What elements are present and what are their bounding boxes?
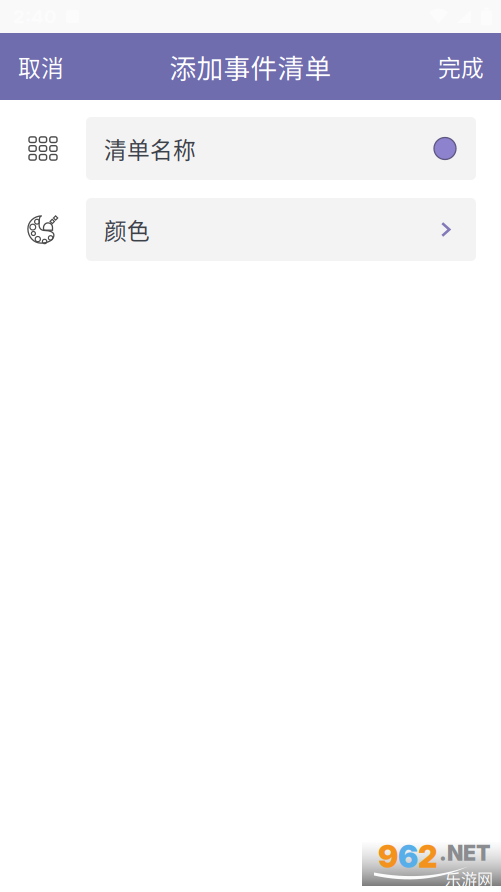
staticText: 取消	[18, 50, 64, 83]
staticText: 添加事件清单	[169, 47, 331, 86]
staticText: 9	[378, 838, 398, 875]
staticText: 颜色	[104, 213, 150, 246]
staticText: 清单名称	[104, 132, 196, 165]
button[interactable]: 取消	[0, 34, 80, 99]
staticText: 2	[418, 838, 438, 875]
staticText: 完成	[438, 50, 484, 83]
button[interactable]: 颜色	[0, 198, 501, 261]
button[interactable]: 清单名称	[0, 117, 501, 180]
staticText: .NET	[439, 840, 491, 866]
staticText: 乐游网	[445, 867, 493, 890]
button[interactable]: 完成	[422, 34, 501, 99]
staticText: 6	[398, 838, 418, 875]
